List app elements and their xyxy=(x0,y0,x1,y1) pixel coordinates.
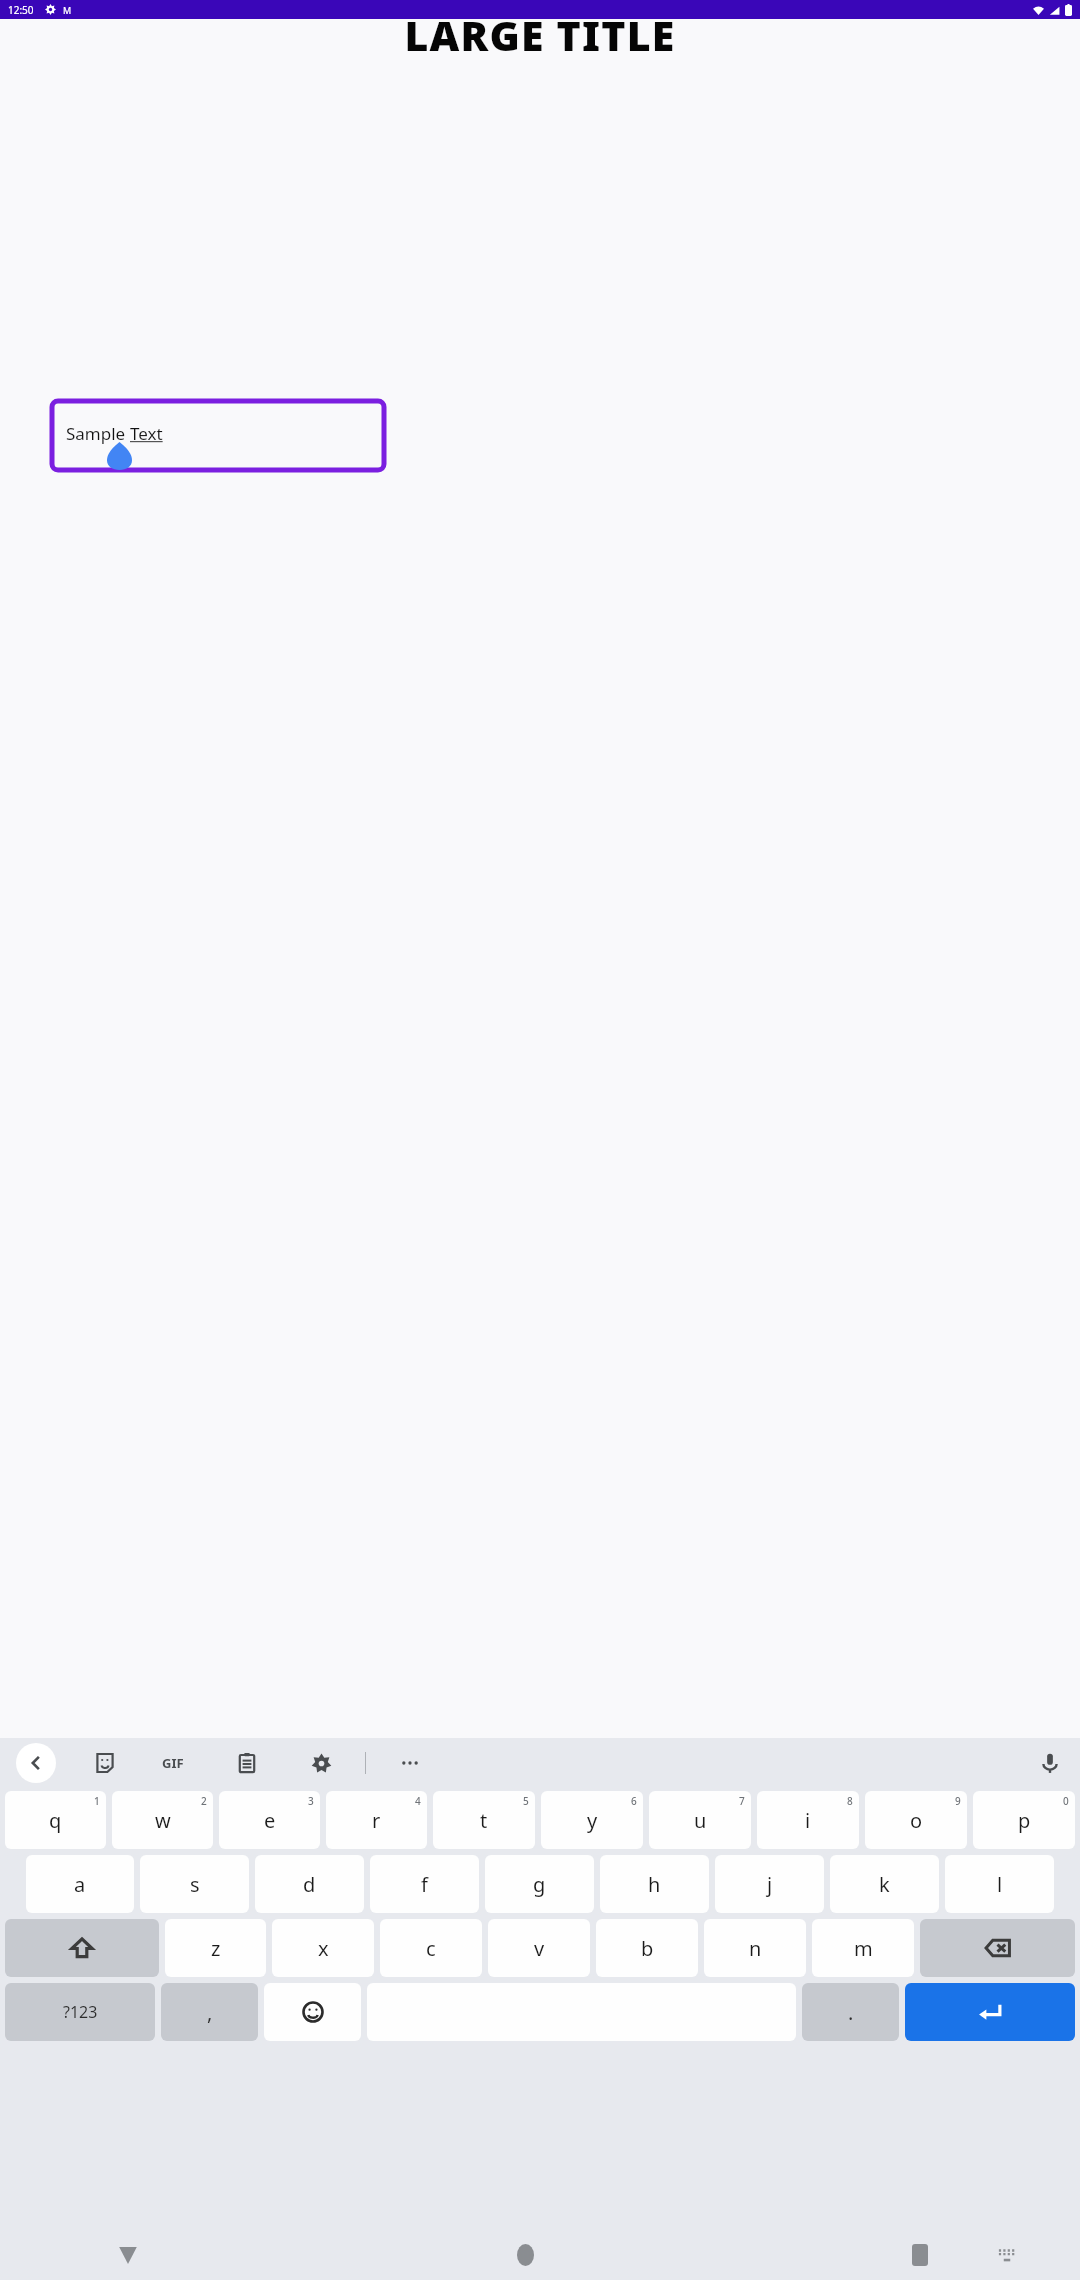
button[interactable]: v xyxy=(488,1919,590,1977)
staticText: z xyxy=(211,1935,221,1962)
staticText: 0 xyxy=(1063,1794,1069,1808)
staticText: 5 xyxy=(523,1794,529,1808)
button[interactable]: Emoji xyxy=(264,1983,361,2041)
staticText: v xyxy=(534,1935,545,1962)
staticText: 1 xyxy=(94,1794,100,1808)
button[interactable]: j xyxy=(715,1855,824,1913)
button[interactable]: Hide keyboard xyxy=(108,2235,148,2275)
staticText: r xyxy=(372,1807,381,1834)
button[interactable]: Back xyxy=(16,1743,56,1783)
staticText: q xyxy=(49,1807,62,1834)
button[interactable]: b xyxy=(596,1919,698,1977)
button[interactable]: h xyxy=(600,1855,709,1913)
staticText: n xyxy=(749,1935,762,1962)
button[interactable]: Settings xyxy=(303,1745,339,1781)
button[interactable]: z xyxy=(165,1919,266,1977)
staticText: k xyxy=(879,1871,890,1898)
staticText: b xyxy=(641,1935,654,1962)
button[interactable]: q xyxy=(5,1791,106,1849)
button[interactable]: ?123 xyxy=(5,1983,155,2041)
staticText: ?123 xyxy=(63,2001,98,2023)
button[interactable]: Sticker xyxy=(87,1745,123,1781)
button[interactable]: w xyxy=(112,1791,213,1849)
staticText: f xyxy=(421,1871,428,1898)
button[interactable]: f xyxy=(370,1855,479,1913)
staticText: 6 xyxy=(631,1794,637,1808)
button[interactable]: t xyxy=(433,1791,535,1849)
staticText: 4 xyxy=(415,1794,421,1808)
staticText: p xyxy=(1018,1807,1031,1834)
button[interactable]: s xyxy=(140,1855,249,1913)
staticText: . xyxy=(848,1999,854,2026)
staticText: y xyxy=(587,1807,598,1834)
button[interactable]: Recent apps xyxy=(900,2235,940,2275)
staticText: Text xyxy=(130,422,163,445)
button[interactable]: Home xyxy=(505,2235,545,2275)
button[interactable]: m xyxy=(812,1919,914,1977)
button[interactable]: Voice input xyxy=(1032,1745,1068,1781)
button[interactable]: Shift xyxy=(5,1919,159,1977)
staticText: Sample xyxy=(66,422,130,445)
button[interactable]: p xyxy=(973,1791,1075,1849)
staticText: i xyxy=(805,1807,811,1834)
staticText: c xyxy=(426,1935,436,1962)
staticText: l xyxy=(997,1871,1003,1898)
staticText: GIF xyxy=(162,1754,184,1772)
staticText: t xyxy=(480,1807,488,1834)
staticText: 3 xyxy=(308,1794,314,1808)
staticText: x xyxy=(318,1935,329,1962)
staticText: e xyxy=(264,1807,276,1834)
staticText: u xyxy=(694,1807,707,1834)
staticText: 9 xyxy=(955,1794,961,1808)
button[interactable]: r xyxy=(326,1791,427,1849)
button[interactable]: d xyxy=(255,1855,364,1913)
button[interactable]: l xyxy=(945,1855,1054,1913)
staticText: o xyxy=(910,1807,923,1834)
staticText: 8 xyxy=(847,1794,853,1808)
button[interactable]: More options xyxy=(392,1745,428,1781)
staticText: 12:50 xyxy=(8,3,34,17)
staticText: m xyxy=(854,1935,873,1962)
button[interactable]: y xyxy=(541,1791,643,1849)
staticText: w xyxy=(155,1807,171,1834)
staticText: s xyxy=(190,1871,200,1898)
staticText: g xyxy=(533,1871,546,1898)
staticText: d xyxy=(303,1871,316,1898)
button[interactable]: Sample xyxy=(52,401,384,470)
staticText: a xyxy=(74,1871,86,1898)
button[interactable]: Backspace xyxy=(920,1919,1075,1977)
button[interactable]: Switch keyboard xyxy=(989,2237,1025,2273)
button[interactable]: g xyxy=(485,1855,594,1913)
button[interactable]: Enter xyxy=(905,1983,1075,2041)
button[interactable]: Clipboard xyxy=(229,1745,265,1781)
staticText: , xyxy=(207,1999,213,2026)
button[interactable]: x xyxy=(272,1919,374,1977)
button[interactable]: u xyxy=(649,1791,751,1849)
staticText: M xyxy=(63,4,72,16)
staticText: 2 xyxy=(201,1794,207,1808)
button[interactable]: , xyxy=(161,1983,258,2041)
staticText: 7 xyxy=(739,1794,745,1808)
other: Settings notification xyxy=(45,4,56,15)
staticText: h xyxy=(648,1871,661,1898)
button[interactable]: e xyxy=(219,1791,320,1849)
staticText: j xyxy=(767,1871,773,1898)
button[interactable]: k xyxy=(830,1855,939,1913)
button[interactable]: . xyxy=(802,1983,899,2041)
staticText: LARGE TITLE xyxy=(0,7,1080,63)
button[interactable]: i xyxy=(757,1791,859,1849)
button[interactable]: o xyxy=(865,1791,967,1849)
button[interactable]: GIF xyxy=(155,1745,191,1781)
button[interactable]: c xyxy=(380,1919,482,1977)
button[interactable]: n xyxy=(704,1919,806,1977)
button[interactable]: a xyxy=(26,1855,134,1913)
